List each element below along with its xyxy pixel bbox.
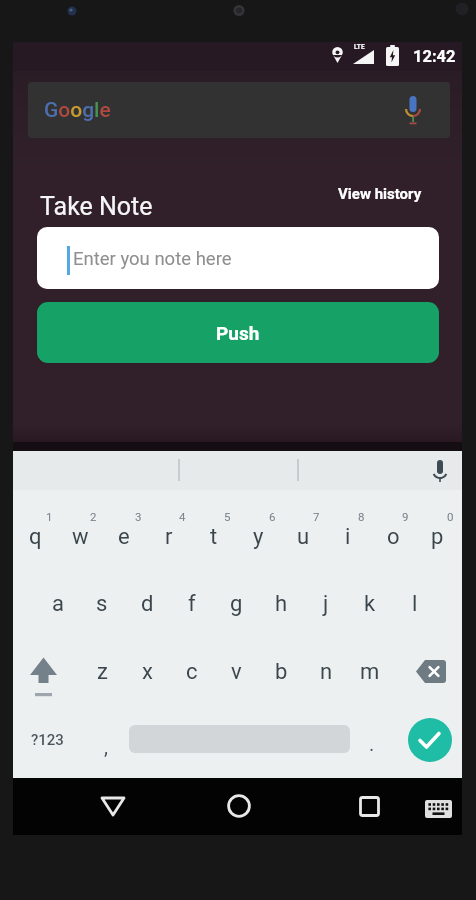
staticText: g — [230, 591, 243, 617]
staticText: q — [29, 524, 42, 550]
staticText: r — [165, 524, 173, 550]
staticText: v — [231, 659, 242, 685]
button[interactable]: g — [215, 582, 257, 626]
staticText: Google — [44, 98, 111, 123]
staticText: 5 — [224, 510, 231, 523]
staticText: 3 — [135, 510, 142, 523]
button[interactable]: e — [103, 515, 145, 559]
button[interactable] — [416, 660, 446, 683]
staticText: 7 — [313, 510, 320, 523]
button[interactable]: l — [394, 582, 436, 626]
staticText: t — [210, 524, 218, 550]
button[interactable] — [28, 82, 450, 138]
staticText: w — [72, 524, 89, 550]
button[interactable]: f — [171, 582, 213, 626]
staticText: , — [104, 735, 108, 758]
staticText: z — [97, 659, 108, 685]
staticText: ?123 — [31, 731, 64, 749]
staticText: . — [369, 732, 375, 755]
button[interactable]: z — [81, 650, 123, 694]
button[interactable]: s — [81, 582, 123, 626]
button[interactable]: a — [37, 582, 79, 626]
staticText: Push — [216, 322, 260, 344]
button[interactable] — [92, 789, 134, 823]
button[interactable]: x — [126, 650, 168, 694]
button[interactable]: w — [59, 515, 101, 559]
staticText: 9 — [402, 510, 409, 523]
staticText: 12:42 — [413, 47, 456, 66]
button[interactable]: n — [305, 650, 347, 694]
button[interactable]: o — [372, 515, 414, 559]
staticText: e — [118, 524, 130, 550]
button[interactable]: i — [327, 515, 369, 559]
staticText: Enter you note here — [73, 248, 232, 270]
button[interactable] — [408, 718, 452, 762]
staticText: h — [275, 591, 288, 617]
staticText: a — [52, 591, 64, 617]
staticText: i — [345, 524, 351, 550]
button[interactable]: h — [260, 582, 302, 626]
staticText: n — [320, 659, 333, 685]
staticText: 1 — [46, 510, 53, 523]
staticText: k — [364, 591, 376, 617]
staticText: 0 — [447, 510, 454, 523]
button[interactable]: u — [282, 515, 324, 559]
button[interactable] — [30, 657, 57, 697]
button[interactable]: v — [215, 650, 257, 694]
button[interactable]: b — [260, 650, 302, 694]
button[interactable] — [348, 789, 390, 823]
button[interactable]: k — [349, 582, 391, 626]
staticText: x — [142, 659, 153, 685]
staticText: 8 — [358, 510, 365, 523]
staticText: c — [186, 659, 198, 685]
staticText: u — [297, 524, 310, 550]
button[interactable] — [417, 794, 459, 824]
button[interactable]: y — [237, 515, 279, 559]
staticText: 2 — [90, 510, 97, 523]
staticText: y — [253, 524, 264, 550]
staticText: View history — [338, 185, 422, 203]
staticText: j — [323, 591, 329, 617]
staticText: Take Note — [40, 192, 153, 221]
button[interactable]: j — [305, 582, 347, 626]
staticText: o — [387, 524, 400, 550]
staticText: l — [412, 591, 418, 617]
button[interactable]: r — [148, 515, 190, 559]
button[interactable]: m — [349, 650, 391, 694]
staticText: 4 — [179, 510, 186, 523]
button[interactable] — [37, 227, 439, 289]
button[interactable]: d — [126, 582, 168, 626]
staticText: LTE — [354, 43, 365, 51]
button[interactable]: q — [14, 515, 56, 559]
staticText: 6 — [269, 510, 276, 523]
button[interactable]: t — [193, 515, 235, 559]
button[interactable]: Push — [37, 302, 439, 363]
button[interactable]: p — [416, 515, 458, 559]
staticText: b — [275, 659, 288, 685]
staticText: p — [431, 524, 444, 550]
button[interactable]: c — [171, 650, 213, 694]
staticText: m — [360, 659, 380, 685]
staticText: d — [141, 591, 154, 617]
staticText: s — [96, 591, 108, 617]
button[interactable] — [218, 789, 260, 823]
staticText: f — [188, 591, 196, 617]
button[interactable] — [432, 460, 448, 487]
